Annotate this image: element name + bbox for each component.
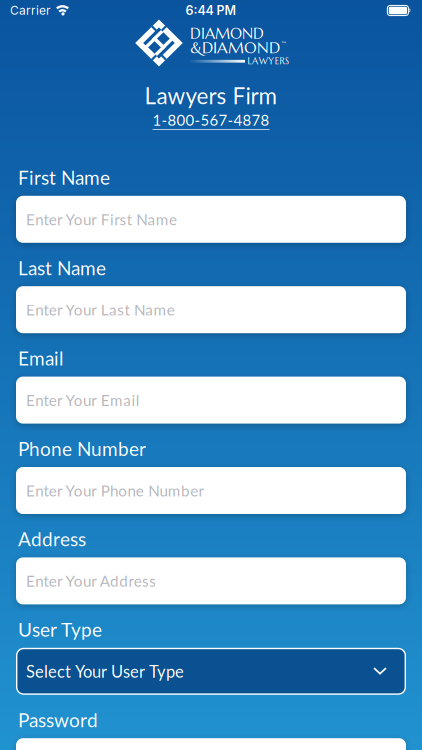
staticText: 6:44 PM	[185, 3, 236, 18]
staticText: Phone Number	[18, 437, 146, 460]
staticText: Enter Your First Name	[26, 210, 177, 228]
button[interactable]: Enter Your Address	[16, 557, 406, 604]
button[interactable]: Select Your User Type	[16, 648, 406, 695]
staticText: User Type	[18, 618, 102, 641]
staticText: DIAMOND	[190, 27, 264, 40]
staticText: 1-800-567-4878	[152, 111, 269, 129]
staticText: Select Your User Type	[26, 661, 184, 681]
button[interactable]: Enter Your Password	[16, 738, 406, 750]
button[interactable]: Enter Your Phone Number	[16, 467, 406, 514]
staticText: Password	[18, 708, 98, 731]
staticText: Enter Your Last Name	[26, 301, 175, 319]
staticText: First Name	[18, 166, 110, 189]
staticText: Enter Your Phone Number	[26, 481, 204, 500]
button[interactable]: Enter Your First Name	[16, 196, 406, 243]
staticText: Last Name	[18, 256, 106, 279]
staticText: Carrier	[10, 3, 51, 18]
staticText: Lawyers Firm	[144, 82, 277, 109]
button[interactable]: 1-800-567-4878	[152, 111, 269, 129]
staticText: Enter Your Address	[26, 572, 156, 590]
staticText: ™	[281, 40, 286, 47]
staticText: Address	[18, 528, 86, 550]
button[interactable]: Enter Your Email	[16, 377, 406, 424]
staticText: &DIAMOND	[190, 40, 280, 55]
staticText: LAWYERS	[247, 57, 289, 65]
button[interactable]: Enter Your Last Name	[16, 286, 406, 333]
staticText: Email	[18, 347, 63, 370]
staticText: Enter Your Email	[26, 391, 140, 409]
